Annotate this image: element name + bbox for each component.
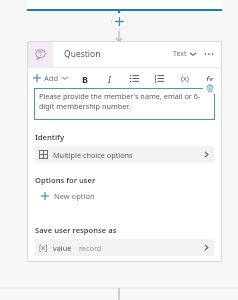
staticText: Text: [173, 49, 187, 59]
staticText: B: [82, 73, 88, 85]
button[interactable]: Question: [64, 48, 101, 60]
button[interactable]: Add step: [111, 13, 128, 30]
staticText: Options for user: [35, 175, 96, 185]
staticText: I: [108, 73, 111, 85]
button[interactable]: Text: [171, 49, 198, 59]
button[interactable]: Bulleted list: [127, 71, 142, 86]
button[interactable]: Multiple choice options: [35, 146, 214, 163]
button[interactable]: Add: [33, 73, 68, 83]
staticText: Multiple choice options: [53, 150, 133, 160]
staticText: [x]: [39, 243, 48, 253]
staticText: (x): [181, 74, 189, 84]
staticText: Please provide the member's name, email …: [39, 91, 211, 111]
staticText: value: [53, 243, 72, 253]
button[interactable]: Insert function: [202, 71, 217, 86]
button[interactable]: Insert variable: [177, 71, 192, 86]
staticText: New option: [54, 191, 95, 201]
button[interactable]: Please provide the member's name, email …: [34, 88, 215, 120]
button[interactable]: Bold: [77, 71, 92, 86]
staticText: Add: [44, 73, 59, 83]
button[interactable]: Delete: [203, 81, 216, 94]
button[interactable]: Numbered list: [152, 71, 167, 86]
button[interactable]: More options: [202, 47, 216, 61]
staticText: Save user response as: [35, 225, 117, 235]
staticText: record: [79, 243, 102, 253]
staticText: Question: [64, 48, 101, 60]
button[interactable]: [x]: [35, 239, 214, 256]
button[interactable]: New option: [41, 191, 95, 201]
staticText: fx: [206, 73, 214, 85]
staticText: Identify: [35, 132, 65, 142]
button[interactable]: Italic: [102, 71, 117, 86]
